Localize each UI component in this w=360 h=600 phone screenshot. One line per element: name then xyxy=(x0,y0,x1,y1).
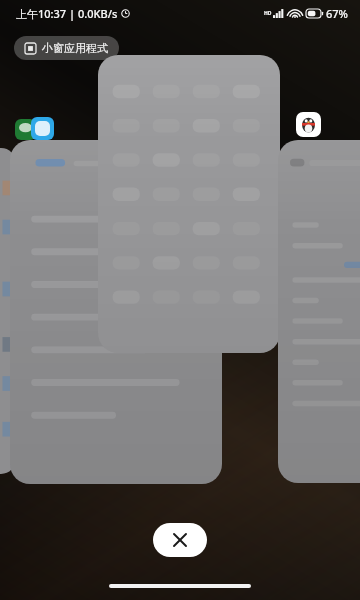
button[interactable] xyxy=(10,140,222,484)
staticText: 上午10:37 | 0.0KB/s xyxy=(16,6,118,21)
button[interactable] xyxy=(0,148,16,474)
button[interactable]: Close all recent apps xyxy=(153,523,207,557)
staticText: 小窗应用程式 xyxy=(42,41,108,55)
button[interactable] xyxy=(98,55,280,353)
staticText: 67% xyxy=(326,6,348,21)
button[interactable] xyxy=(278,140,360,483)
button[interactable]: 小窗应用程式 xyxy=(14,36,119,60)
staticText: HD xyxy=(264,10,272,17)
